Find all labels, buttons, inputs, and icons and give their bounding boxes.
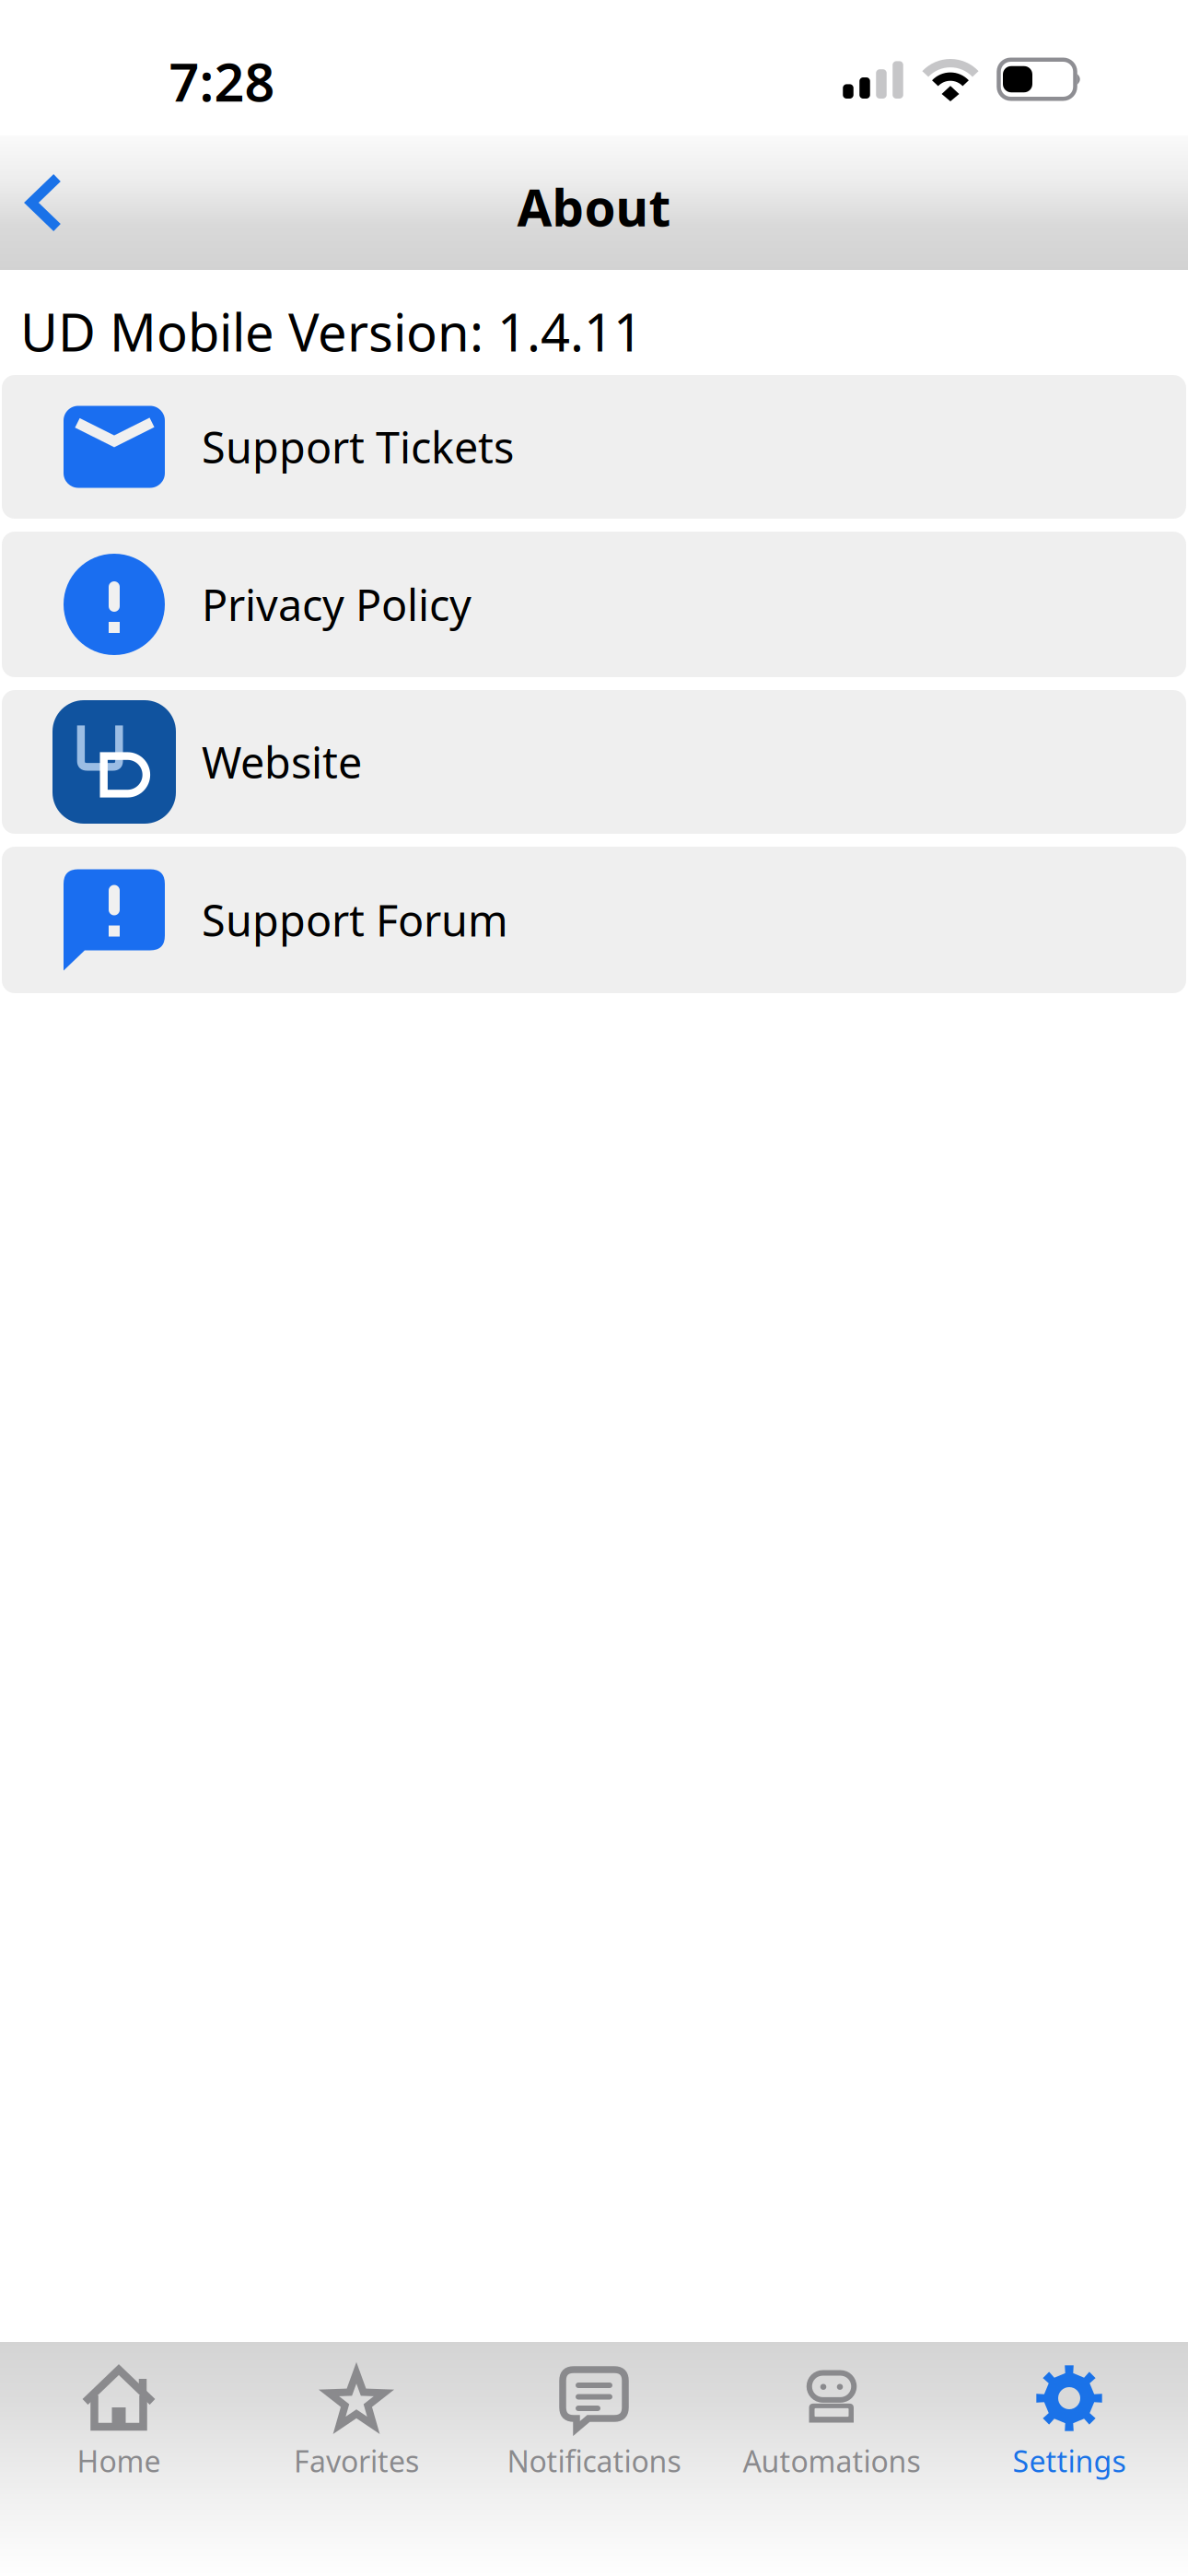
button[interactable]: Back (0, 148, 88, 257)
button[interactable]: Website (2, 690, 1186, 834)
staticText: Support Forum (202, 891, 508, 948)
button[interactable]: Support Forum (2, 847, 1186, 993)
staticText: 7:28 (169, 46, 275, 116)
staticText: Automations (743, 2441, 920, 2480)
button[interactable]: Privacy Policy (2, 532, 1186, 677)
staticText: About (517, 173, 671, 240)
staticText: Support Tickets (202, 418, 514, 475)
button[interactable]: Automations (713, 2342, 950, 2576)
staticText: Notifications (507, 2441, 681, 2480)
staticText: Settings (1013, 2441, 1126, 2480)
staticText: UD Mobile Version: 1.4.11 (20, 297, 643, 366)
button[interactable]: Favorites (238, 2342, 475, 2576)
staticText: Favorites (294, 2441, 419, 2480)
staticText: Website (202, 733, 362, 790)
button[interactable]: Home (0, 2342, 238, 2576)
button[interactable]: Settings (950, 2342, 1188, 2576)
staticText: Privacy Policy (202, 576, 472, 633)
button[interactable]: Notifications (475, 2342, 713, 2576)
button[interactable]: Support Tickets (2, 375, 1186, 519)
staticText: Home (77, 2441, 161, 2480)
